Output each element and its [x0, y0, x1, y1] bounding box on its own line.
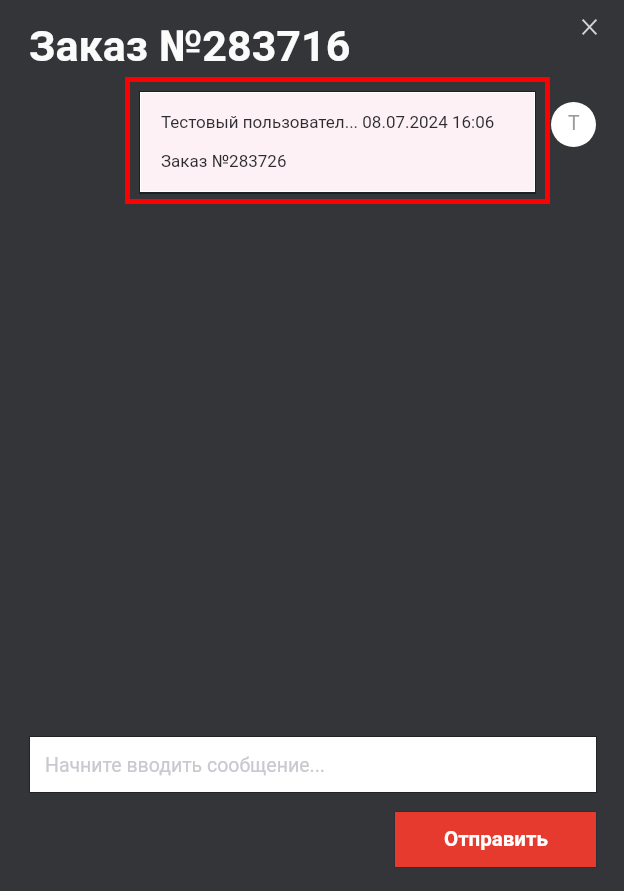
button[interactable]: Close: [569, 7, 607, 45]
staticText: Тестовый пользовател... 08.07.2024 16:06: [161, 112, 495, 132]
button[interactable]: [125, 77, 550, 204]
button[interactable]: Отправить: [395, 812, 596, 867]
button[interactable]: Т: [551, 102, 596, 147]
button[interactable]: Тестовый пользовател... 08.07.2024 16:06: [141, 93, 534, 191]
staticText: Заказ №283716: [29, 21, 351, 71]
staticText: Заказ №283726: [161, 151, 287, 171]
staticText: Т: [568, 112, 580, 135]
button[interactable]: Начните вводить сообщение...: [30, 737, 596, 792]
staticText: Отправить: [444, 827, 548, 851]
staticText: Начните вводить сообщение...: [45, 754, 325, 777]
